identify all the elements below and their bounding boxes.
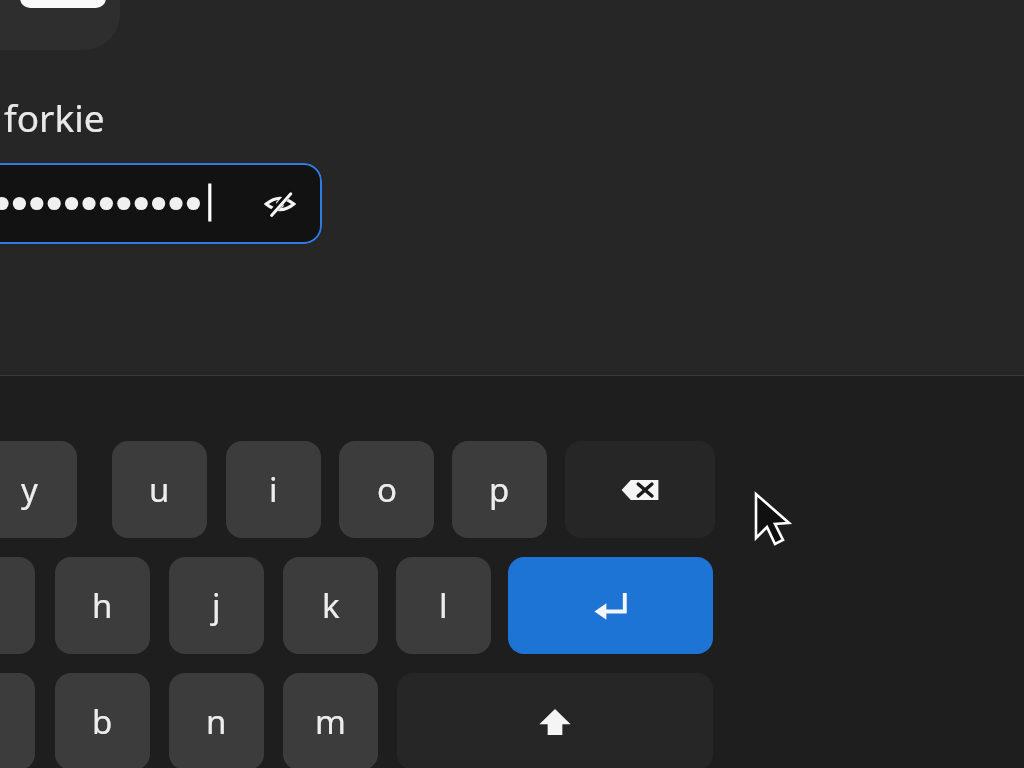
staticText: l [439, 583, 448, 628]
button[interactable]: p [452, 441, 547, 538]
staticText: j [212, 583, 221, 628]
button[interactable]: Show password [258, 182, 302, 226]
staticText: n [206, 699, 227, 744]
button[interactable]: y [0, 441, 77, 538]
button[interactable] [20, 0, 106, 8]
staticText: b [92, 699, 113, 744]
staticText: h [92, 583, 113, 628]
button[interactable]: m [283, 673, 378, 768]
staticText: forkie [4, 92, 105, 142]
staticText: y [21, 467, 38, 512]
button[interactable] [0, 673, 35, 768]
staticText: u [149, 467, 170, 512]
button[interactable]: i [226, 441, 321, 538]
staticText: i [269, 467, 278, 512]
staticText: m [315, 699, 346, 744]
button[interactable]: h [55, 557, 150, 654]
button[interactable]: u [112, 441, 207, 538]
staticText: o [377, 467, 397, 512]
button[interactable]: n [169, 673, 264, 768]
button[interactable]: j [169, 557, 264, 654]
button[interactable]: l [396, 557, 491, 654]
button[interactable]: k [283, 557, 378, 654]
button[interactable]: Backspace [565, 441, 715, 538]
button[interactable]: Show password [0, 163, 322, 244]
button[interactable] [0, 557, 35, 654]
button[interactable]: Shift [397, 673, 713, 768]
button[interactable]: b [55, 673, 150, 768]
button[interactable]: o [339, 441, 434, 538]
staticText: k [322, 583, 340, 628]
button[interactable]: Enter [508, 557, 713, 654]
staticText: p [489, 467, 510, 512]
